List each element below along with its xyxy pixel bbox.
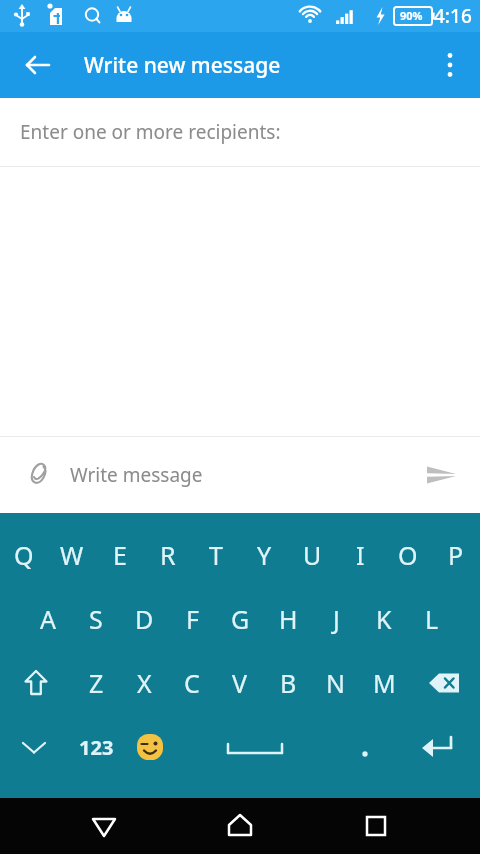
staticText: B: [280, 666, 297, 700]
staticText: D: [135, 602, 154, 636]
button[interactable]: F: [168, 587, 216, 651]
staticText: V: [232, 666, 248, 700]
button[interactable]: Back: [72, 798, 136, 854]
button[interactable]: Send: [414, 448, 468, 502]
button[interactable]: Recent apps: [344, 798, 408, 854]
button[interactable]: Z: [72, 651, 120, 715]
button[interactable]: S: [72, 587, 120, 651]
button[interactable]: [335, 715, 395, 779]
staticText: P: [448, 538, 464, 572]
button[interactable]: Backspace: [408, 651, 480, 715]
staticText: W: [60, 538, 84, 572]
button[interactable]: W: [48, 523, 96, 587]
staticText: X: [137, 666, 152, 700]
staticText: Write new message: [84, 51, 281, 80]
staticText: O: [398, 538, 418, 572]
staticText: J: [333, 602, 340, 636]
staticText: T: [209, 538, 223, 572]
staticText: A: [40, 602, 56, 636]
button[interactable]: Attach file: [14, 451, 62, 499]
staticText: G: [231, 602, 250, 636]
staticText: I: [356, 538, 365, 572]
staticText: C: [184, 666, 200, 700]
button[interactable]: G: [216, 587, 264, 651]
button[interactable]: D: [120, 587, 168, 651]
button[interactable]: C: [168, 651, 216, 715]
button[interactable]: I: [336, 523, 384, 587]
button[interactable]: Emoji: [125, 715, 175, 779]
staticText: M: [373, 666, 396, 700]
button[interactable]: V: [216, 651, 264, 715]
staticText: 4:16: [434, 3, 472, 29]
button[interactable]: P: [432, 523, 480, 587]
button[interactable]: Enter: [395, 715, 480, 779]
staticText: R: [160, 538, 176, 572]
staticText: N: [326, 666, 346, 700]
staticText: 123: [79, 734, 114, 761]
button[interactable]: K: [360, 587, 408, 651]
button[interactable]: E: [96, 523, 144, 587]
button[interactable]: 123: [67, 715, 125, 779]
staticText: Enter one or more recipients:: [20, 119, 281, 145]
button[interactable]: Shift: [0, 651, 72, 715]
button[interactable]: T: [192, 523, 240, 587]
button[interactable]: J: [312, 587, 360, 651]
staticText: Q: [14, 538, 34, 572]
button[interactable]: O: [384, 523, 432, 587]
staticText: E: [113, 538, 127, 572]
staticText: Y: [257, 538, 272, 572]
staticText: K: [376, 602, 392, 636]
staticText: U: [303, 538, 322, 572]
staticText: S: [89, 602, 103, 636]
staticText: 90%: [400, 8, 423, 23]
button[interactable]: Enter one or more recipients:: [0, 98, 480, 166]
button[interactable]: M: [360, 651, 408, 715]
button[interactable]: Q: [0, 523, 48, 587]
staticText: Write message: [70, 462, 203, 488]
button[interactable]: Y: [240, 523, 288, 587]
button[interactable]: Hide keyboard: [0, 715, 67, 779]
button[interactable]: L: [408, 587, 456, 651]
button[interactable]: X: [120, 651, 168, 715]
button[interactable]: N: [312, 651, 360, 715]
staticText: H: [279, 602, 298, 636]
button[interactable]: U: [288, 523, 336, 587]
button[interactable]: Home: [208, 798, 272, 854]
button[interactable]: R: [144, 523, 192, 587]
staticText: F: [186, 602, 199, 636]
staticText: L: [425, 602, 439, 636]
button[interactable]: H: [264, 587, 312, 651]
button[interactable]: A: [24, 587, 72, 651]
button[interactable]: More options: [426, 41, 474, 89]
staticText: Z: [89, 666, 104, 700]
button[interactable]: B: [264, 651, 312, 715]
button[interactable]: Back: [14, 41, 62, 89]
button[interactable]: Space: [175, 715, 335, 779]
